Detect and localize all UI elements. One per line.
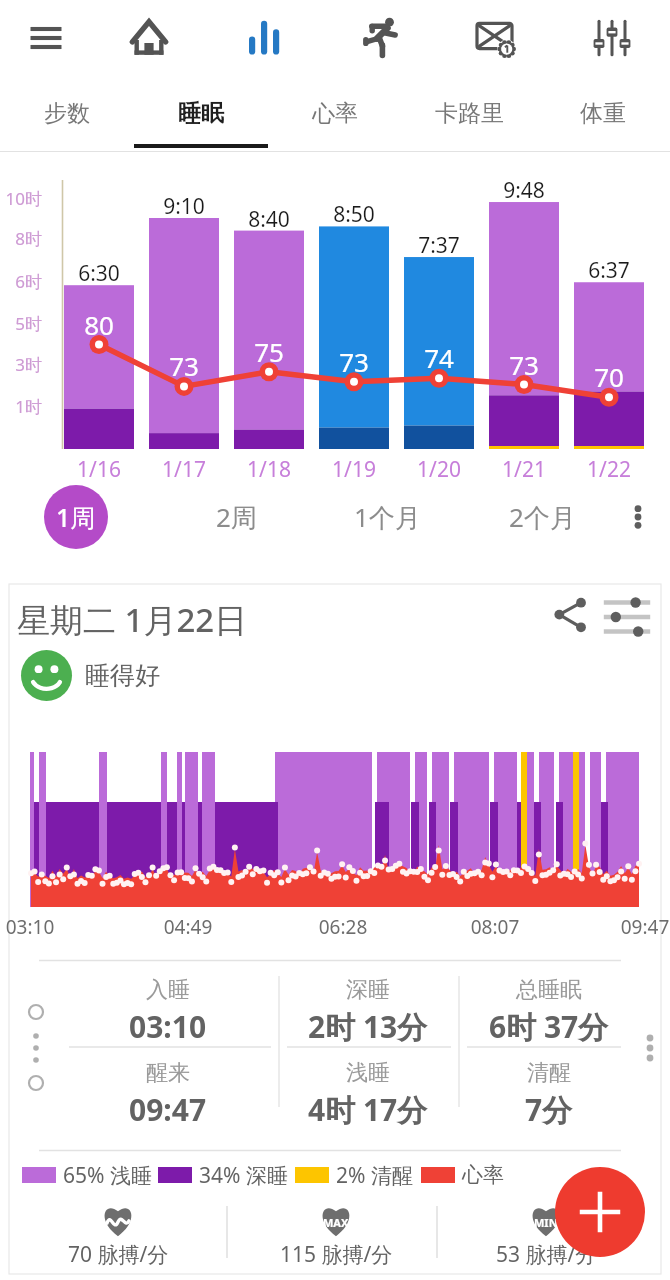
staticText: 2周 <box>216 499 257 535</box>
staticText: 1/18 <box>234 455 304 484</box>
button[interactable]: Messages <box>467 10 523 66</box>
staticText: 08:07 <box>470 914 520 940</box>
staticText: 7:37 <box>404 231 474 260</box>
staticText: 6时 <box>0 270 42 293</box>
staticText: 5时 <box>0 312 42 335</box>
staticText: 75 <box>234 334 304 369</box>
button[interactable]: Menu <box>18 10 74 66</box>
staticText: 星期二 1月22日 <box>17 597 248 642</box>
staticText: 9:48 <box>489 176 559 205</box>
button[interactable]: 1个月 <box>327 492 447 542</box>
staticText: 03:10 <box>129 1006 207 1047</box>
staticText: 09:47 <box>129 1089 207 1130</box>
staticText: 73 <box>319 344 389 379</box>
button[interactable]: Share <box>544 589 596 641</box>
staticText: 1时 <box>0 395 42 418</box>
staticText: 1/19 <box>319 455 389 484</box>
staticText: MAX <box>323 1215 349 1230</box>
staticText: 8:40 <box>234 205 304 234</box>
staticText: 2时 13分 <box>308 1006 428 1047</box>
staticText: 心率 <box>312 99 358 128</box>
staticText: 3时 <box>0 353 42 376</box>
button[interactable]: Settings <box>584 10 640 66</box>
staticText: 8时 <box>0 227 42 250</box>
button[interactable]: 卡路里 <box>402 74 536 152</box>
staticText: 睡得好 <box>85 660 160 691</box>
staticText: 1周 <box>56 500 96 534</box>
staticText: 4时 17分 <box>308 1089 428 1130</box>
staticText: 2% 清醒 <box>336 1161 413 1190</box>
staticText: 入睡 <box>146 976 190 1004</box>
button[interactable]: Activity <box>352 10 408 66</box>
staticText: 04:49 <box>163 914 213 940</box>
staticText: 73 <box>489 347 559 382</box>
button[interactable]: 2周 <box>176 492 296 542</box>
staticText: 浅睡 <box>346 1059 390 1087</box>
button[interactable]: MIN <box>441 1202 651 1269</box>
staticText: 深睡 <box>346 976 390 1004</box>
staticText: 74 <box>404 340 474 375</box>
button[interactable]: 体重 <box>536 74 670 152</box>
button[interactable]: 1周 <box>44 485 108 549</box>
staticText: 1/21 <box>489 455 559 484</box>
staticText: 80 <box>64 307 134 342</box>
staticText: 70 脉搏/分 <box>68 1240 169 1269</box>
staticText: 115 脉搏/分 <box>280 1240 393 1269</box>
button[interactable]: 步数 <box>0 74 134 152</box>
button[interactable]: Add <box>555 1167 645 1257</box>
staticText: 06:28 <box>318 914 368 940</box>
staticText: 6:37 <box>574 256 644 285</box>
staticText: 53 脉搏/分 <box>496 1240 597 1269</box>
staticText: MIN <box>534 1215 558 1230</box>
button[interactable]: 心率 <box>268 74 402 152</box>
staticText: 73 <box>149 348 219 383</box>
staticText: 6时 37分 <box>489 1006 609 1047</box>
staticText: 2个月 <box>509 499 576 535</box>
staticText: 65% 浅睡 <box>63 1161 152 1190</box>
button[interactable]: More options <box>614 493 662 541</box>
button[interactable]: Statistics <box>236 10 292 66</box>
staticText: 09:47 <box>620 914 670 940</box>
staticText: 34% 深睡 <box>199 1161 288 1190</box>
staticText: 睡眠 <box>178 99 224 128</box>
staticText: 醒来 <box>146 1059 190 1087</box>
button[interactable]: 睡眠 <box>134 74 268 152</box>
staticText: 1/17 <box>149 455 219 484</box>
staticText: 7分 <box>525 1089 573 1130</box>
staticText: 总睡眠 <box>516 976 582 1004</box>
button[interactable]: Filter <box>601 591 653 643</box>
staticText: 6:30 <box>64 259 134 288</box>
staticText: 心率 <box>462 1162 504 1188</box>
staticText: 体重 <box>580 99 626 128</box>
staticText: 1个月 <box>354 499 421 535</box>
staticText: 8:50 <box>319 200 389 229</box>
button[interactable]: 70 脉搏/分 <box>13 1202 223 1269</box>
staticText: 步数 <box>44 99 90 128</box>
staticText: 1/20 <box>404 455 474 484</box>
staticText: 1/22 <box>574 455 644 484</box>
button[interactable]: 2个月 <box>482 492 602 542</box>
button[interactable]: Home <box>121 10 177 66</box>
staticText: 03:10 <box>5 914 55 940</box>
staticText: 1/16 <box>64 455 134 484</box>
staticText: 70 <box>574 359 644 394</box>
staticText: 卡路里 <box>435 99 504 128</box>
staticText: 10时 <box>0 187 42 210</box>
button[interactable]: MAX <box>231 1202 441 1269</box>
staticText: 清醒 <box>527 1059 571 1087</box>
staticText: 9:10 <box>149 192 219 221</box>
